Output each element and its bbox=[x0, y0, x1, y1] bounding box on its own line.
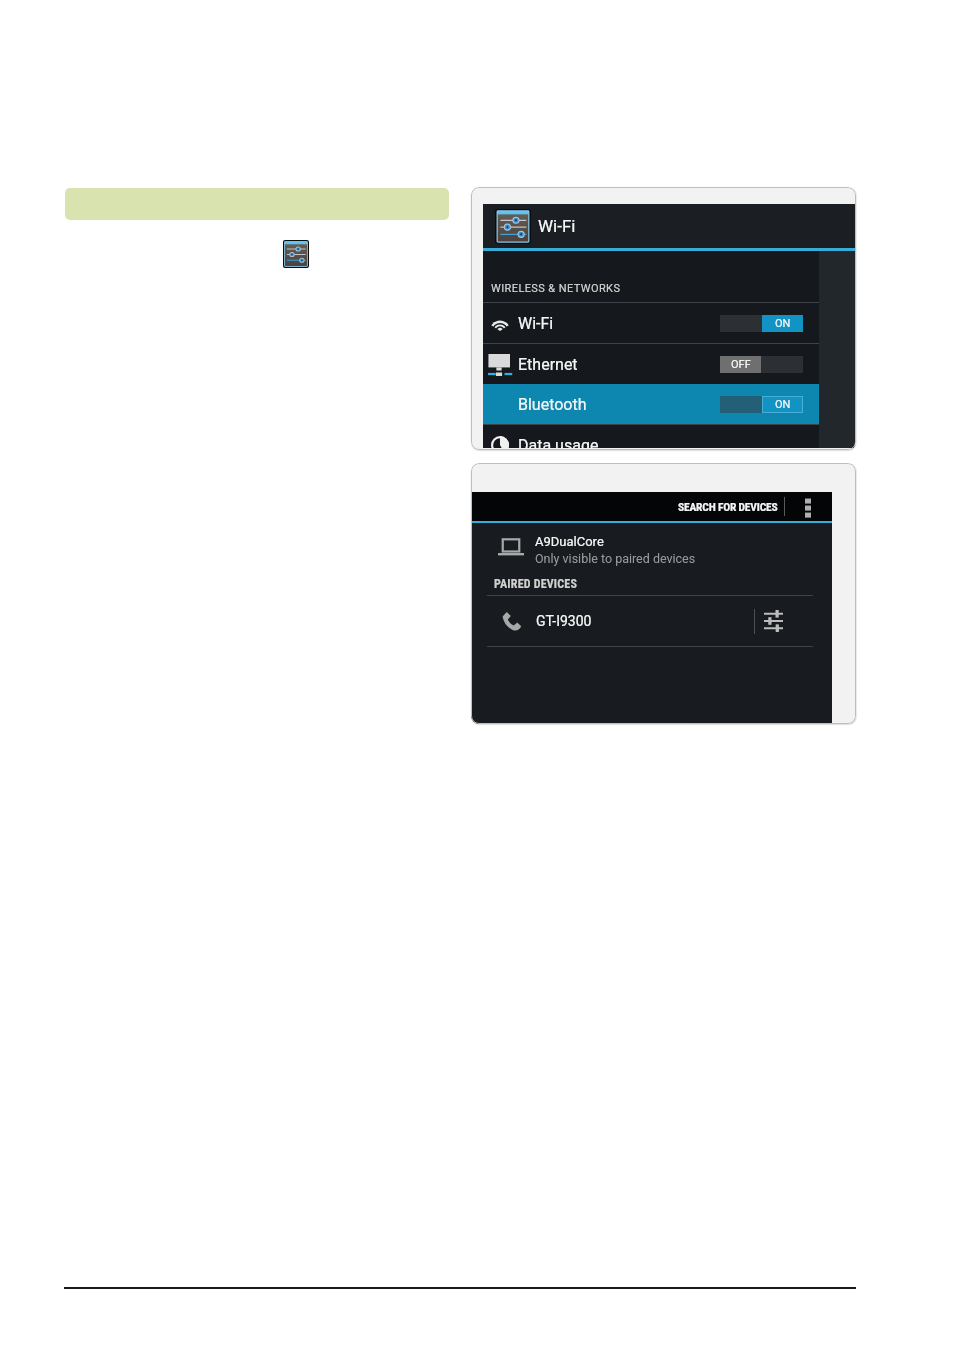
staticText: Data usage bbox=[518, 436, 599, 448]
staticText: ON bbox=[775, 398, 791, 411]
staticText: ON bbox=[775, 317, 791, 330]
button[interactable]: SEARCH FOR DEVICES bbox=[676, 495, 780, 518]
button[interactable]: Bluetooth bbox=[483, 384, 819, 424]
staticText: A9DualCore bbox=[535, 534, 604, 549]
button[interactable]: GT-I9300 bbox=[471, 596, 832, 646]
staticText: PAIRED DEVICES bbox=[494, 577, 578, 591]
staticText: SEARCH FOR DEVICES bbox=[678, 500, 778, 513]
staticText: Wi-Fi bbox=[538, 216, 576, 236]
button[interactable]: Wi-Fi bbox=[483, 303, 819, 343]
staticText: Ethernet bbox=[518, 355, 578, 374]
button[interactable]: Data usage bbox=[483, 425, 819, 448]
staticText: Bluetooth bbox=[518, 395, 587, 414]
staticText: Only visible to paired devices bbox=[535, 551, 696, 566]
button[interactable]: A9DualCore bbox=[471, 523, 832, 577]
button[interactable]: ON bbox=[720, 315, 803, 332]
staticText: WIRELESS & NETWORKS bbox=[491, 282, 621, 295]
button[interactable]: ON bbox=[720, 396, 803, 413]
staticText: Wi-Fi bbox=[518, 314, 554, 333]
button[interactable]: Device settings bbox=[755, 596, 832, 646]
staticText: OFF bbox=[731, 358, 751, 371]
button[interactable]: More options bbox=[802, 495, 814, 519]
button[interactable]: Ethernet bbox=[483, 344, 819, 384]
staticText: GT-I9300 bbox=[536, 613, 592, 629]
button[interactable]: OFF bbox=[720, 356, 803, 373]
button[interactable]: Wi-Fi bbox=[483, 204, 855, 248]
